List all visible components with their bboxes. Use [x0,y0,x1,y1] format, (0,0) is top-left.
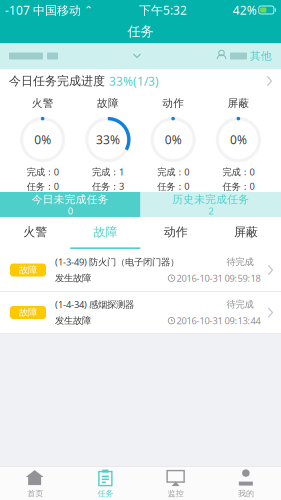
button[interactable]: 我的 [211,467,281,500]
staticText: 故障 [19,307,37,318]
staticText: 0% [165,132,182,147]
staticText: ⌃ [81,4,93,16]
staticText: 33% [96,132,120,147]
button[interactable]: 历史未完成任务 [140,192,281,217]
staticText: 故障 [97,97,119,110]
staticText: 2 [208,205,213,217]
staticText: 屏蔽 [234,225,258,239]
staticText: 42% [233,2,257,18]
staticText: 首页 [27,489,43,498]
staticText: 发生故障 [55,315,91,326]
button[interactable]: 今日任务完成进度 [0,69,281,93]
staticText: 完成：0 [222,166,254,178]
staticText: 任务：0 [157,180,189,192]
staticText: 历史未完成任务 [172,193,249,206]
staticText: 0% [34,132,51,147]
button[interactable]: 今日未完成任务 [0,192,140,217]
staticText: 故障 [19,264,37,276]
staticText: 任务 [97,489,113,498]
staticText: 完成：0 [27,166,59,178]
staticText: -107 中国移动 [5,2,81,18]
staticText: 任务：0 [27,180,59,192]
staticText: 2016-10-31 09:59:18 [176,272,260,284]
staticText: 动作 [162,97,184,110]
staticText: (1-3-49) 防火门（电子闭门器） [55,256,179,268]
staticText: 其他 [250,49,272,62]
staticText: 待完成 [226,299,253,310]
staticText: 完成：0 [157,166,189,178]
staticText: 火警 [23,225,47,239]
button[interactable] [9,52,216,59]
staticText: 待完成 [226,256,253,268]
button[interactable]: 屏蔽 [211,217,281,249]
button[interactable]: 故障 [0,292,281,334]
staticText: 下午5:32 [139,2,187,18]
staticText: 33%(1/3) [109,73,159,89]
staticText: 火警 [32,97,54,110]
staticText: 今日未完成任务 [32,193,109,206]
staticText: 任务：0 [222,180,254,192]
button[interactable]: 首页 [0,467,70,500]
staticText: 2016-10-31 09:13:44 [176,314,260,327]
button[interactable]: 故障 [70,217,140,249]
staticText: 动作 [164,225,188,239]
staticText: 今日任务完成进度 [9,74,105,88]
button[interactable]: 动作 [140,217,211,249]
staticText: 我的 [238,489,254,498]
button[interactable]: 监控 [140,467,211,500]
staticText: 故障 [93,225,117,239]
button[interactable]: 任务 [70,467,140,500]
staticText: 发生故障 [55,272,91,284]
staticText: 0% [230,132,247,147]
button[interactable]: 其他 [216,49,272,62]
staticText: 任务 [127,23,153,40]
staticText: 监控 [168,489,184,498]
staticText: 0 [68,205,73,217]
staticText: 完成：1 [92,166,124,178]
button[interactable]: 故障 [0,249,281,292]
staticText: 屏蔽 [227,97,249,110]
staticText: 任务：3 [92,180,124,192]
staticText: (1-4-34) 感烟探测器 [55,298,134,310]
button[interactable]: 火警 [0,217,70,249]
